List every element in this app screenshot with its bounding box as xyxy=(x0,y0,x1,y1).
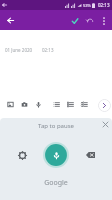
button[interactable]: Numbered list xyxy=(64,98,77,111)
button[interactable]: Bulleted list xyxy=(50,98,63,111)
button[interactable]: Back xyxy=(2,12,18,28)
button[interactable]: Close xyxy=(100,119,110,129)
button[interactable]: Pause voice input xyxy=(43,142,69,168)
staticText: 02:13 xyxy=(98,2,110,8)
button[interactable]: Pin note xyxy=(67,13,82,28)
button[interactable]: Backspace xyxy=(81,146,99,164)
button[interactable]: Undo xyxy=(82,13,97,28)
button[interactable]: Settings xyxy=(13,146,31,164)
staticText: Google xyxy=(0,178,112,188)
staticText: Tap to pause xyxy=(38,122,74,130)
button[interactable]: More options xyxy=(97,14,111,28)
button[interactable]: Take photo xyxy=(18,98,31,111)
staticText: 53% xyxy=(83,3,91,8)
button[interactable]: Voice input xyxy=(32,98,45,111)
button[interactable]: Checklist xyxy=(78,98,91,111)
staticText: 01 June 2020 xyxy=(5,47,33,53)
staticText: 02:13 xyxy=(42,47,54,53)
button[interactable]: Insert image xyxy=(4,98,17,111)
button[interactable]: More formatting xyxy=(98,99,111,112)
